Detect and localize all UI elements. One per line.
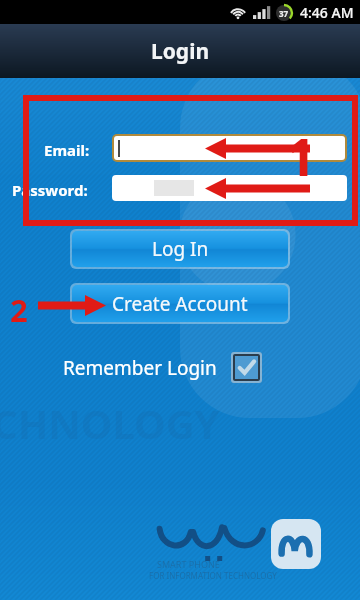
staticText: 37 (279, 8, 289, 19)
staticText: 4:46 AM (300, 3, 354, 22)
staticText: Log In (152, 236, 209, 262)
staticText: Login (151, 37, 210, 66)
staticText: Email: (44, 140, 90, 160)
staticText: Remember Login (63, 355, 217, 381)
button[interactable]: Remember Login (63, 352, 262, 383)
button[interactable]: Log In (72, 231, 288, 267)
button[interactable]: Email field (114, 136, 345, 160)
button[interactable]: Password field (112, 175, 347, 201)
button[interactable]: Create Account (72, 285, 288, 322)
staticText: CHNOLOGY (0, 396, 220, 450)
staticText: Password: (12, 180, 88, 200)
staticText: 1 (286, 120, 316, 191)
staticText: SMART PHONE (157, 558, 220, 570)
staticText: Create Account (112, 291, 248, 317)
staticText: FOR INFORMATION TECHNOLOGY (149, 570, 277, 581)
staticText: 2 (10, 289, 28, 331)
